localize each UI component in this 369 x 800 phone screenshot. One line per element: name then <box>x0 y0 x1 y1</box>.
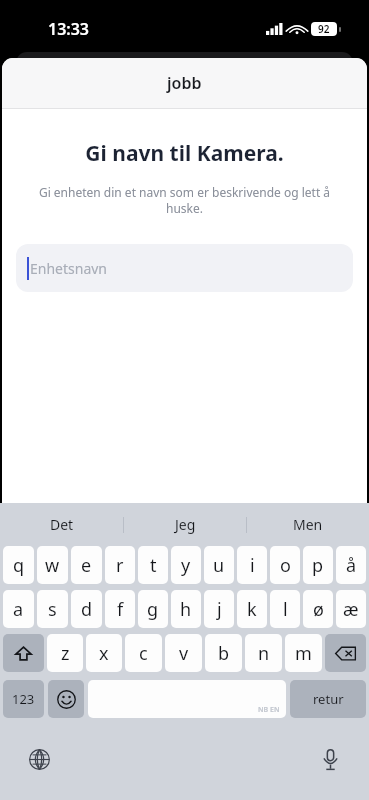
button[interactable]: t <box>138 546 168 584</box>
button[interactable]: y <box>171 546 201 584</box>
staticText: m <box>295 641 312 666</box>
button[interactable]: Enhetsnavn <box>16 244 353 292</box>
button[interactable]: ø <box>303 590 333 628</box>
staticText: k <box>247 597 257 622</box>
staticText: r <box>116 553 124 578</box>
button[interactable]: c <box>125 634 162 672</box>
button[interactable]: e <box>71 546 102 584</box>
button[interactable]: s <box>37 590 68 628</box>
button[interactable]: j <box>204 590 234 628</box>
staticText: u <box>213 553 225 578</box>
staticText: d <box>81 597 93 622</box>
staticText: x <box>99 641 109 666</box>
staticText: æ <box>343 597 359 622</box>
staticText: z <box>61 641 70 666</box>
button[interactable]: Backspace <box>325 634 366 672</box>
staticText: NB EN <box>258 705 280 715</box>
button[interactable]: Dictation <box>313 742 347 776</box>
button[interactable]: i <box>237 546 267 584</box>
staticText: Jeg <box>175 515 196 534</box>
staticText: å <box>346 553 357 578</box>
staticText: 123 <box>12 690 35 708</box>
button[interactable]: l <box>270 590 300 628</box>
staticText: 92 <box>318 22 330 36</box>
staticText: s <box>48 597 57 622</box>
button[interactable]: Det <box>0 503 123 546</box>
button[interactable]: x <box>86 634 122 672</box>
staticText: 13:33 <box>48 18 90 40</box>
staticText: j <box>217 597 222 622</box>
button[interactable]: g <box>138 590 168 628</box>
button[interactable]: retur <box>290 680 366 718</box>
staticText: g <box>147 597 159 622</box>
staticText: Gi navn til Kamera. <box>2 139 367 168</box>
button[interactable]: b <box>205 634 242 672</box>
button[interactable]: å <box>336 546 366 584</box>
button[interactable]: Jeg <box>124 503 246 546</box>
staticText: Gi enheten din et navn som er beskrivend… <box>20 184 349 216</box>
button[interactable]: Emoji <box>48 680 84 718</box>
staticText: n <box>258 641 270 666</box>
button[interactable]: f <box>105 590 135 628</box>
button[interactable]: a <box>3 590 34 628</box>
button[interactable]: m <box>285 634 322 672</box>
staticText: w <box>45 553 60 578</box>
staticText: y <box>181 553 191 578</box>
button[interactable]: æ <box>336 590 366 628</box>
staticText: l <box>283 597 288 622</box>
staticText: a <box>13 597 24 622</box>
button[interactable]: u <box>204 546 234 584</box>
button[interactable]: Shift <box>3 634 44 672</box>
button[interactable]: w <box>37 546 68 584</box>
staticText: f <box>117 597 124 622</box>
staticText: h <box>180 597 192 622</box>
button[interactable]: Space <box>88 680 286 718</box>
staticText: Men <box>293 515 323 534</box>
staticText: e <box>81 553 92 578</box>
button[interactable]: v <box>165 634 202 672</box>
staticText: q <box>13 553 25 578</box>
staticText: p <box>312 553 324 578</box>
staticText: v <box>179 641 189 666</box>
staticText: Det <box>50 515 74 534</box>
button[interactable]: p <box>303 546 333 584</box>
staticText: Enhetsnavn <box>30 259 108 278</box>
button[interactable]: n <box>245 634 282 672</box>
button[interactable]: q <box>3 546 34 584</box>
button[interactable]: k <box>237 590 267 628</box>
button[interactable]: o <box>270 546 300 584</box>
staticText: jobb <box>167 72 202 94</box>
button[interactable]: r <box>105 546 135 584</box>
button[interactable]: 123 <box>3 680 44 718</box>
staticText: b <box>218 641 230 666</box>
button[interactable]: Change keyboard language <box>22 742 56 776</box>
staticText: i <box>250 553 255 578</box>
staticText: o <box>280 553 291 578</box>
staticText: t <box>150 553 157 578</box>
staticText: ø <box>313 597 324 622</box>
button[interactable]: d <box>71 590 102 628</box>
button[interactable]: z <box>47 634 83 672</box>
button[interactable]: h <box>171 590 201 628</box>
staticText: retur <box>313 690 344 708</box>
staticText: c <box>139 641 148 666</box>
button[interactable]: Men <box>247 503 369 546</box>
